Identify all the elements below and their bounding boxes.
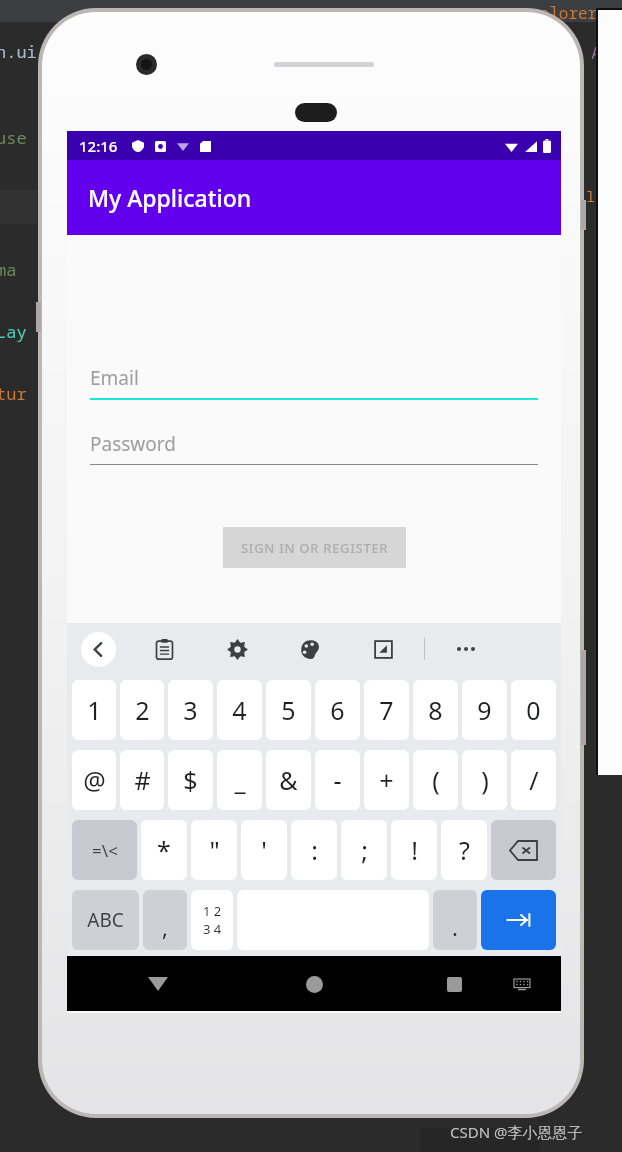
staticText: ; <box>361 833 368 867</box>
staticText: 8 <box>428 693 443 727</box>
staticText: l A <box>572 42 601 64</box>
staticText: ABC <box>87 907 124 933</box>
button[interactable]: Stickers <box>367 633 399 665</box>
staticText: use <box>0 126 27 149</box>
button[interactable]: Password <box>90 431 538 465</box>
staticText: tur <box>0 382 27 405</box>
staticText: + <box>379 763 394 797</box>
button[interactable]: . <box>433 890 477 950</box>
staticText: ? <box>459 833 470 867</box>
button[interactable]: SIGN IN OR REGISTER <box>223 527 406 568</box>
button[interactable]: 2 <box>120 680 164 740</box>
staticText: 3 <box>183 693 198 727</box>
button[interactable]: Switch keyboard <box>505 967 539 1001</box>
button[interactable]: Enter <box>481 890 556 950</box>
staticText: . <box>452 912 458 942</box>
staticText: 9 <box>477 693 492 727</box>
staticText: 12:16 <box>79 136 118 156</box>
button[interactable]: 8 <box>413 680 458 740</box>
button[interactable]: / <box>511 750 556 810</box>
button[interactable]: Home <box>293 963 335 1005</box>
button[interactable]: 9 <box>462 680 507 740</box>
button[interactable]: 4 <box>217 680 262 740</box>
staticText: Password <box>90 431 176 457</box>
staticText: SIGN IN OR REGISTER <box>241 539 389 557</box>
staticText: 0 <box>526 693 541 727</box>
button[interactable]: & <box>266 750 311 810</box>
button[interactable]: # <box>120 750 164 810</box>
button[interactable]: ( <box>413 750 458 810</box>
button[interactable]: 5 <box>266 680 311 740</box>
staticText: xplorer <box>530 2 598 24</box>
staticText: - <box>333 763 342 797</box>
staticText: , <box>162 912 168 942</box>
staticText: =\< <box>92 839 118 862</box>
staticText: 3 4 <box>203 920 222 938</box>
button[interactable]: ) <box>462 750 507 810</box>
button[interactable]: $ <box>168 750 213 810</box>
staticText: 7 <box>379 693 394 727</box>
staticText: 5 <box>281 693 296 727</box>
button[interactable]: 3 <box>168 680 213 740</box>
button[interactable]: Recent apps <box>433 963 475 1005</box>
button[interactable]: 0 <box>511 680 556 740</box>
staticText: 6 <box>330 693 345 727</box>
staticText: $ <box>183 763 198 797</box>
staticText: " <box>209 833 220 867</box>
staticText: Lay <box>0 320 27 343</box>
staticText: n.ui <box>0 40 37 63</box>
button[interactable]: ! <box>391 820 437 880</box>
button[interactable]: =\< <box>72 820 137 880</box>
staticText: / <box>529 763 539 797</box>
button[interactable]: Back <box>81 632 116 667</box>
staticText: ( <box>432 763 440 797</box>
button[interactable]: - <box>315 750 360 810</box>
staticText: My Application <box>88 182 252 213</box>
button[interactable]: ' <box>241 820 287 880</box>
staticText: : <box>311 833 318 867</box>
button[interactable]: " <box>191 820 237 880</box>
staticText: # <box>134 763 151 797</box>
staticText: 2 <box>135 693 150 727</box>
button[interactable]: Backspace <box>491 820 556 880</box>
button[interactable]: 6 <box>315 680 360 740</box>
button[interactable]: Settings <box>221 633 253 665</box>
staticText: ) <box>481 763 489 797</box>
staticText: & <box>279 763 298 797</box>
staticText: 1 <box>87 693 102 727</box>
button[interactable]: ABC <box>72 890 139 950</box>
button[interactable]: 1 <box>72 680 116 740</box>
button[interactable]: : <box>291 820 337 880</box>
staticText: * <box>157 833 171 867</box>
button[interactable]: More options <box>451 634 481 664</box>
button[interactable]: ? <box>441 820 487 880</box>
staticText: li <box>586 186 605 206</box>
button[interactable]: * <box>141 820 187 880</box>
staticText: @ <box>83 763 106 797</box>
staticText: ! <box>411 833 418 867</box>
button[interactable]: 7 <box>364 680 409 740</box>
button[interactable]: Clipboard <box>148 633 180 665</box>
staticText: Email <box>90 365 139 391</box>
button[interactable]: , <box>143 890 187 950</box>
staticText: ma <box>0 258 17 281</box>
button[interactable]: @ <box>72 750 116 810</box>
staticText: _ <box>234 763 246 797</box>
button[interactable]: + <box>364 750 409 810</box>
button[interactable]: Email <box>90 365 538 400</box>
button[interactable]: _ <box>217 750 262 810</box>
button[interactable]: Themes <box>294 633 326 665</box>
staticText: ' <box>261 833 267 867</box>
staticText: 4 <box>232 693 247 727</box>
staticText: 1 2 <box>203 902 222 920</box>
button[interactable]: ; <box>341 820 387 880</box>
button[interactable]: Back <box>137 963 179 1005</box>
staticText: CSDN @李小恩恩子 <box>450 1122 583 1142</box>
button[interactable]: Numbers <box>191 890 233 950</box>
